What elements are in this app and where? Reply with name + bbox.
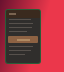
button[interactable] xyxy=(5,9,41,64)
button[interactable] xyxy=(8,36,38,43)
